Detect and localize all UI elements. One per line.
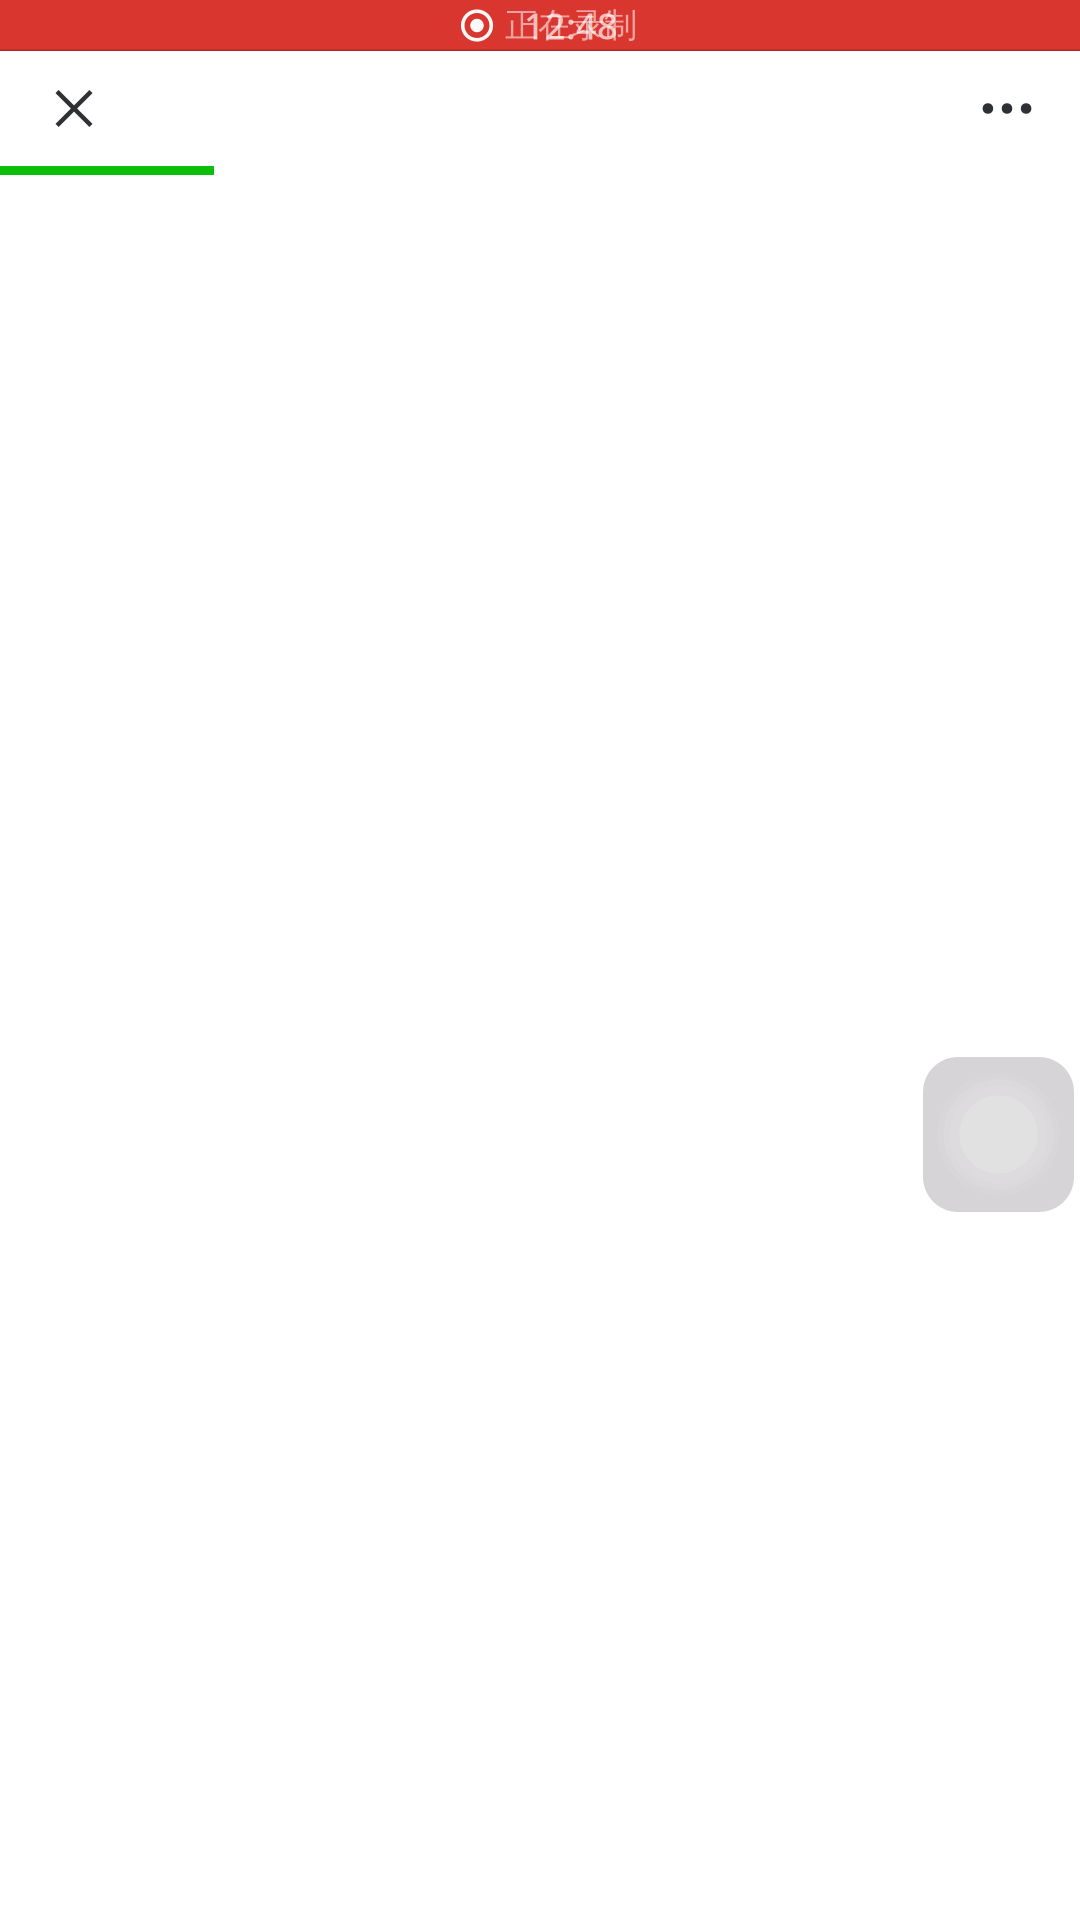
staticText: 正在录制 [505,5,637,46]
button[interactable]: AssistiveTouch [923,1057,1074,1212]
button[interactable]: Close mini program [28,51,120,166]
button[interactable]: More options [961,51,1053,166]
staticText: 12:48 [524,2,618,49]
